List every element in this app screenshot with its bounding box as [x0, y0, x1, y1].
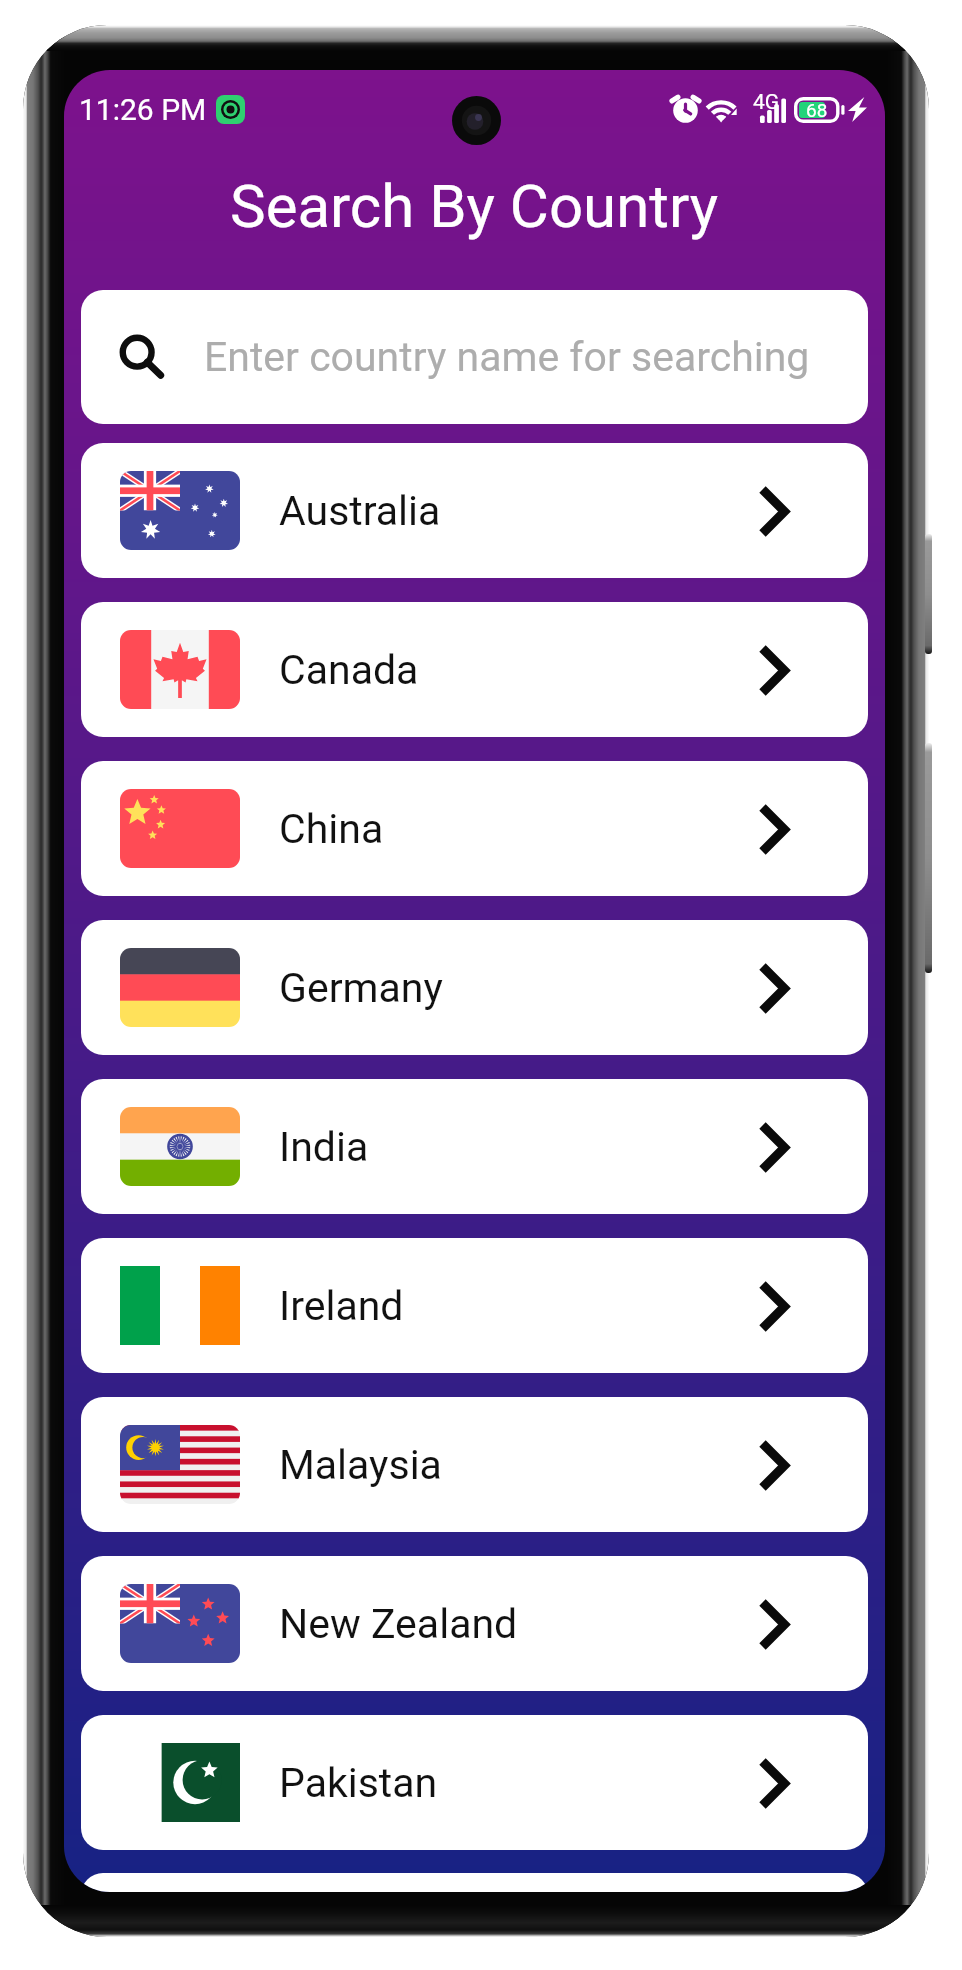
button[interactable]: Pakistan	[81, 1715, 868, 1850]
staticText: China	[279, 805, 384, 853]
staticText: Enter country name for searching	[204, 333, 810, 381]
staticText: Australia	[279, 487, 441, 535]
button[interactable]: Next country	[81, 1873, 868, 1892]
other: Open Canada	[758, 644, 789, 697]
button[interactable]: Malaysia	[81, 1397, 868, 1532]
staticText: Germany	[279, 964, 443, 1012]
other: Open New Zealand	[758, 1598, 789, 1651]
staticText: 4G	[753, 90, 780, 115]
button[interactable]: Germany	[81, 920, 868, 1055]
button[interactable]: China	[81, 761, 868, 896]
other: Open India	[758, 1121, 789, 1174]
staticText: Canada	[279, 646, 419, 694]
other: Open China	[758, 803, 789, 856]
staticText: Malaysia	[279, 1441, 442, 1489]
button[interactable]: New Zealand	[81, 1556, 868, 1691]
other: Open Ireland	[758, 1280, 789, 1333]
staticText: New Zealand	[279, 1600, 518, 1648]
staticText: Search By Country	[230, 171, 719, 241]
button[interactable]: India	[81, 1079, 868, 1214]
staticText: Ireland	[279, 1282, 404, 1330]
other: Open Pakistan	[758, 1757, 789, 1810]
button[interactable]: Canada	[81, 602, 868, 737]
button[interactable]: Search field	[81, 290, 868, 424]
staticText: India	[279, 1123, 369, 1171]
other: Open Germany	[758, 962, 789, 1015]
staticText: Pakistan	[279, 1759, 438, 1807]
button[interactable]: Ireland	[81, 1238, 868, 1373]
other: Open Australia	[758, 485, 789, 538]
other: Open Malaysia	[758, 1439, 789, 1492]
staticText: 11:26 PM	[79, 92, 207, 127]
button[interactable]: Australia	[81, 443, 868, 578]
staticText: 68	[806, 99, 828, 121]
